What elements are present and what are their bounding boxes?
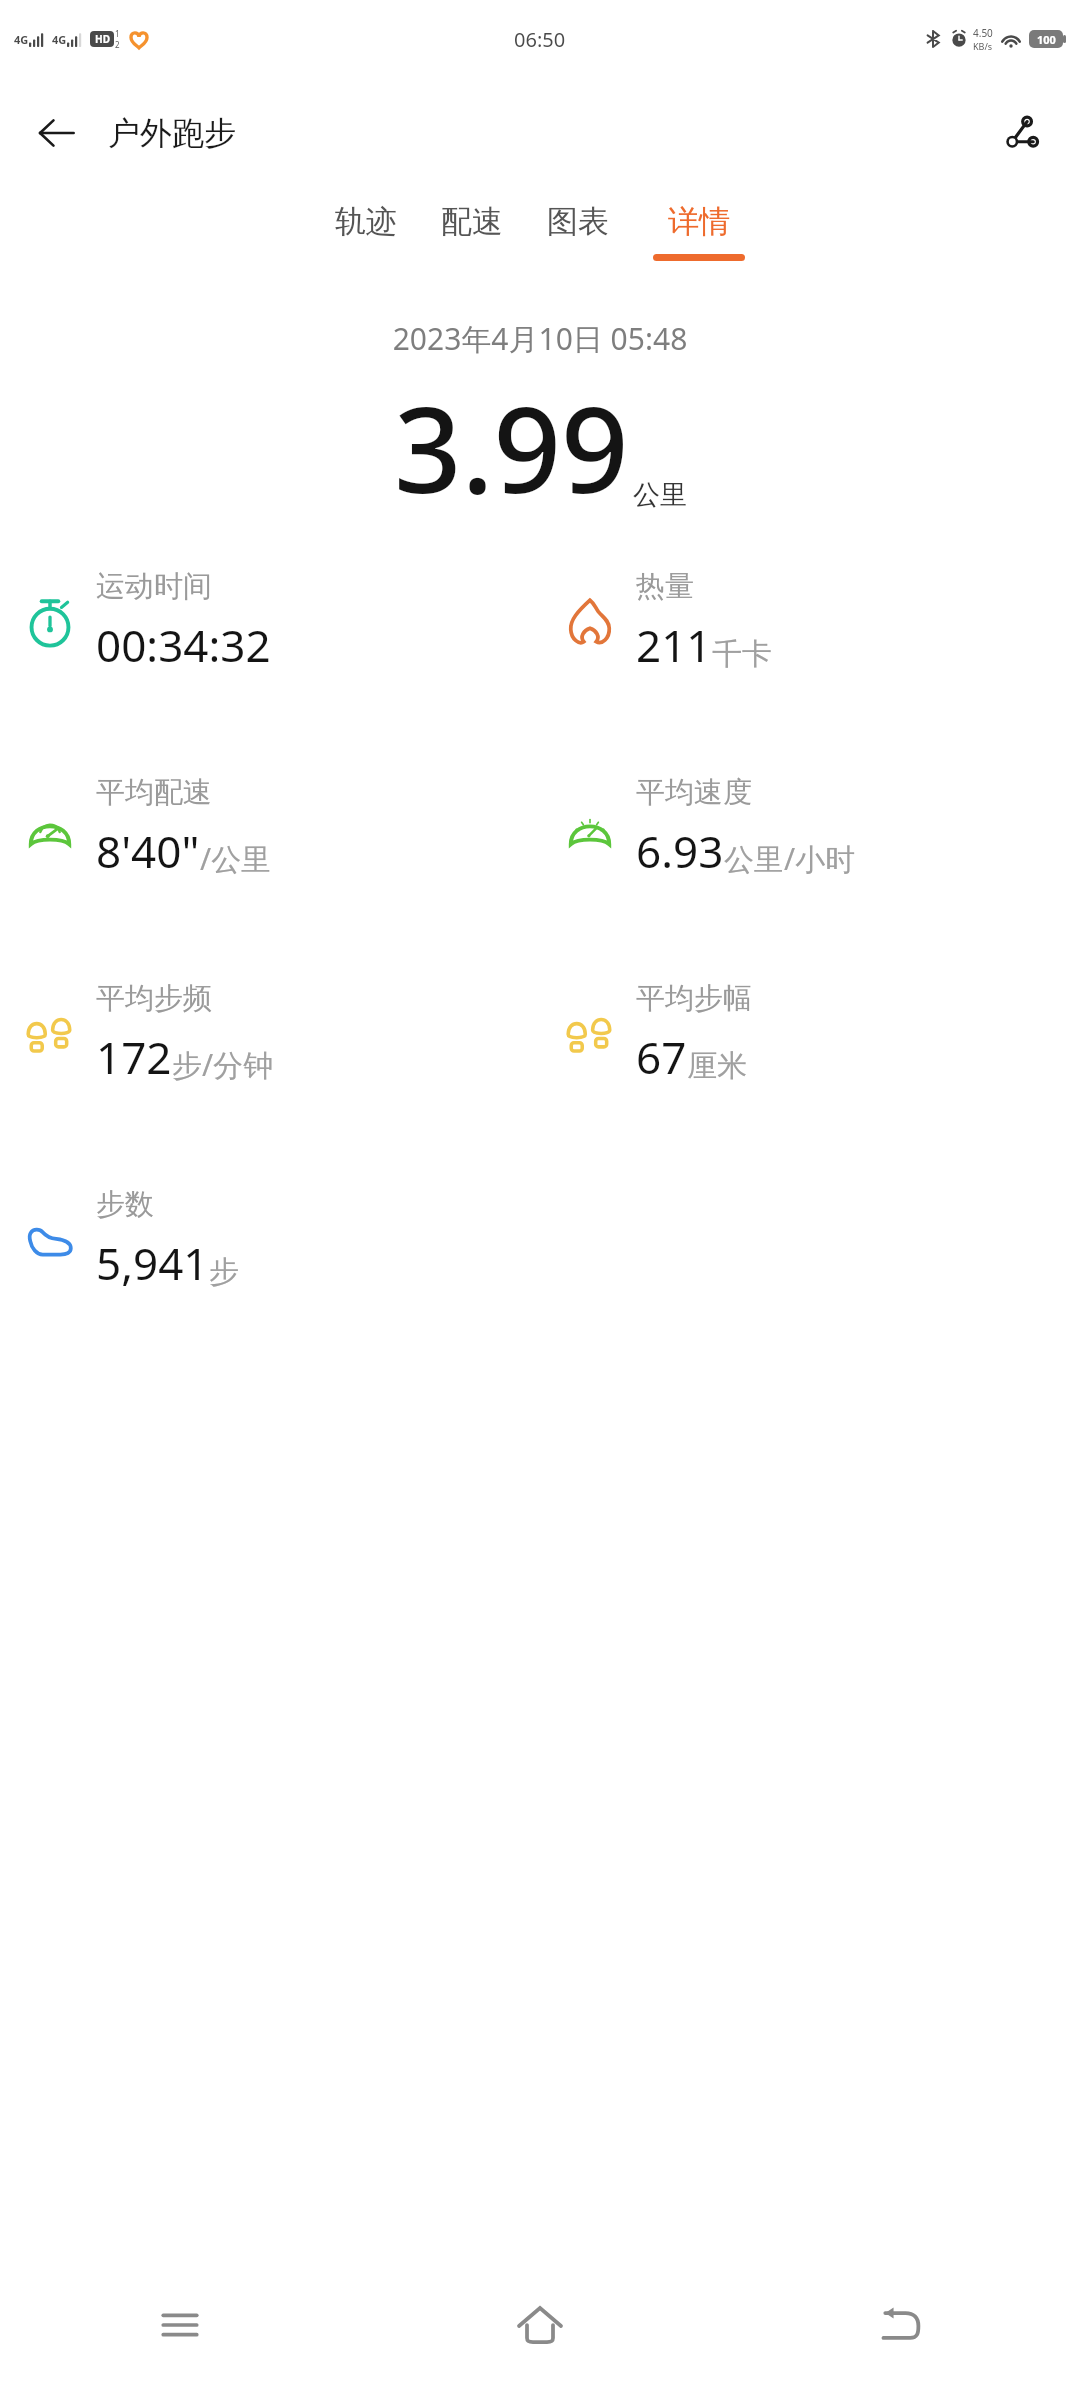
staticText: 步 [209,1253,239,1291]
button[interactable]: 分享 [988,100,1054,166]
staticText: 2 [115,39,120,50]
staticText: 4.50 [973,26,993,40]
button[interactable]: 最近任务 [125,2270,235,2380]
button[interactable]: 热量 [540,558,1080,764]
staticText: 运动时间 [96,568,212,605]
staticText: 配速 [441,202,503,241]
staticText: 平均步频 [96,980,212,1017]
staticText: 图表 [547,202,609,241]
staticText: 平均速度 [636,774,752,811]
button[interactable]: 平均配速 [0,764,540,970]
staticText: /公里 [200,838,272,879]
staticText: 00:34:32 [96,615,271,675]
staticText: 步/分钟 [172,1044,274,1085]
button[interactable]: 运动时间 [0,558,540,764]
staticText: 平均配速 [96,774,212,811]
staticText: 详情 [668,202,730,241]
button[interactable]: 步数 [0,1176,540,1382]
staticText: 172 [96,1027,172,1087]
staticText: 8'40" [96,821,200,881]
staticText: HD [95,32,110,46]
staticText: KB/s [973,40,993,52]
staticText: 4G [14,32,29,47]
staticText: 5,941 [96,1233,209,1293]
staticText: 67 [636,1027,687,1087]
staticText: 6.93 [636,821,724,881]
button[interactable]: 主页 [485,2270,595,2380]
staticText: 千卡 [712,635,772,673]
button[interactable]: 平均步频 [0,970,540,1176]
button[interactable]: 返回 [26,103,86,163]
staticText: 热量 [636,568,694,605]
staticText: 06:50 [514,26,566,53]
button[interactable]: 平均速度 [540,764,1080,970]
staticText: 100 [1037,32,1056,47]
button[interactable]: 轨迹 [335,188,397,261]
button[interactable]: 配速 [441,188,503,261]
staticText: 户外跑步 [108,113,236,153]
staticText: 1 [115,28,120,39]
button[interactable]: 图表 [547,188,609,261]
button[interactable]: 平均步幅 [540,970,1080,1176]
staticText: 3.99 [394,367,629,528]
staticText: 公里/小时 [724,838,856,879]
staticText: 轨迹 [335,202,397,241]
button[interactable]: 返回 [845,2270,955,2380]
staticText: 2023年4月10日 05:48 [0,318,1080,359]
staticText: 211 [636,615,712,675]
staticText: 公里 [633,478,687,512]
staticText: 步数 [96,1186,154,1223]
button[interactable]: 详情 [653,188,745,261]
staticText: 平均步幅 [636,980,752,1017]
staticText: 4G [52,32,67,47]
staticText: 厘米 [687,1047,747,1085]
